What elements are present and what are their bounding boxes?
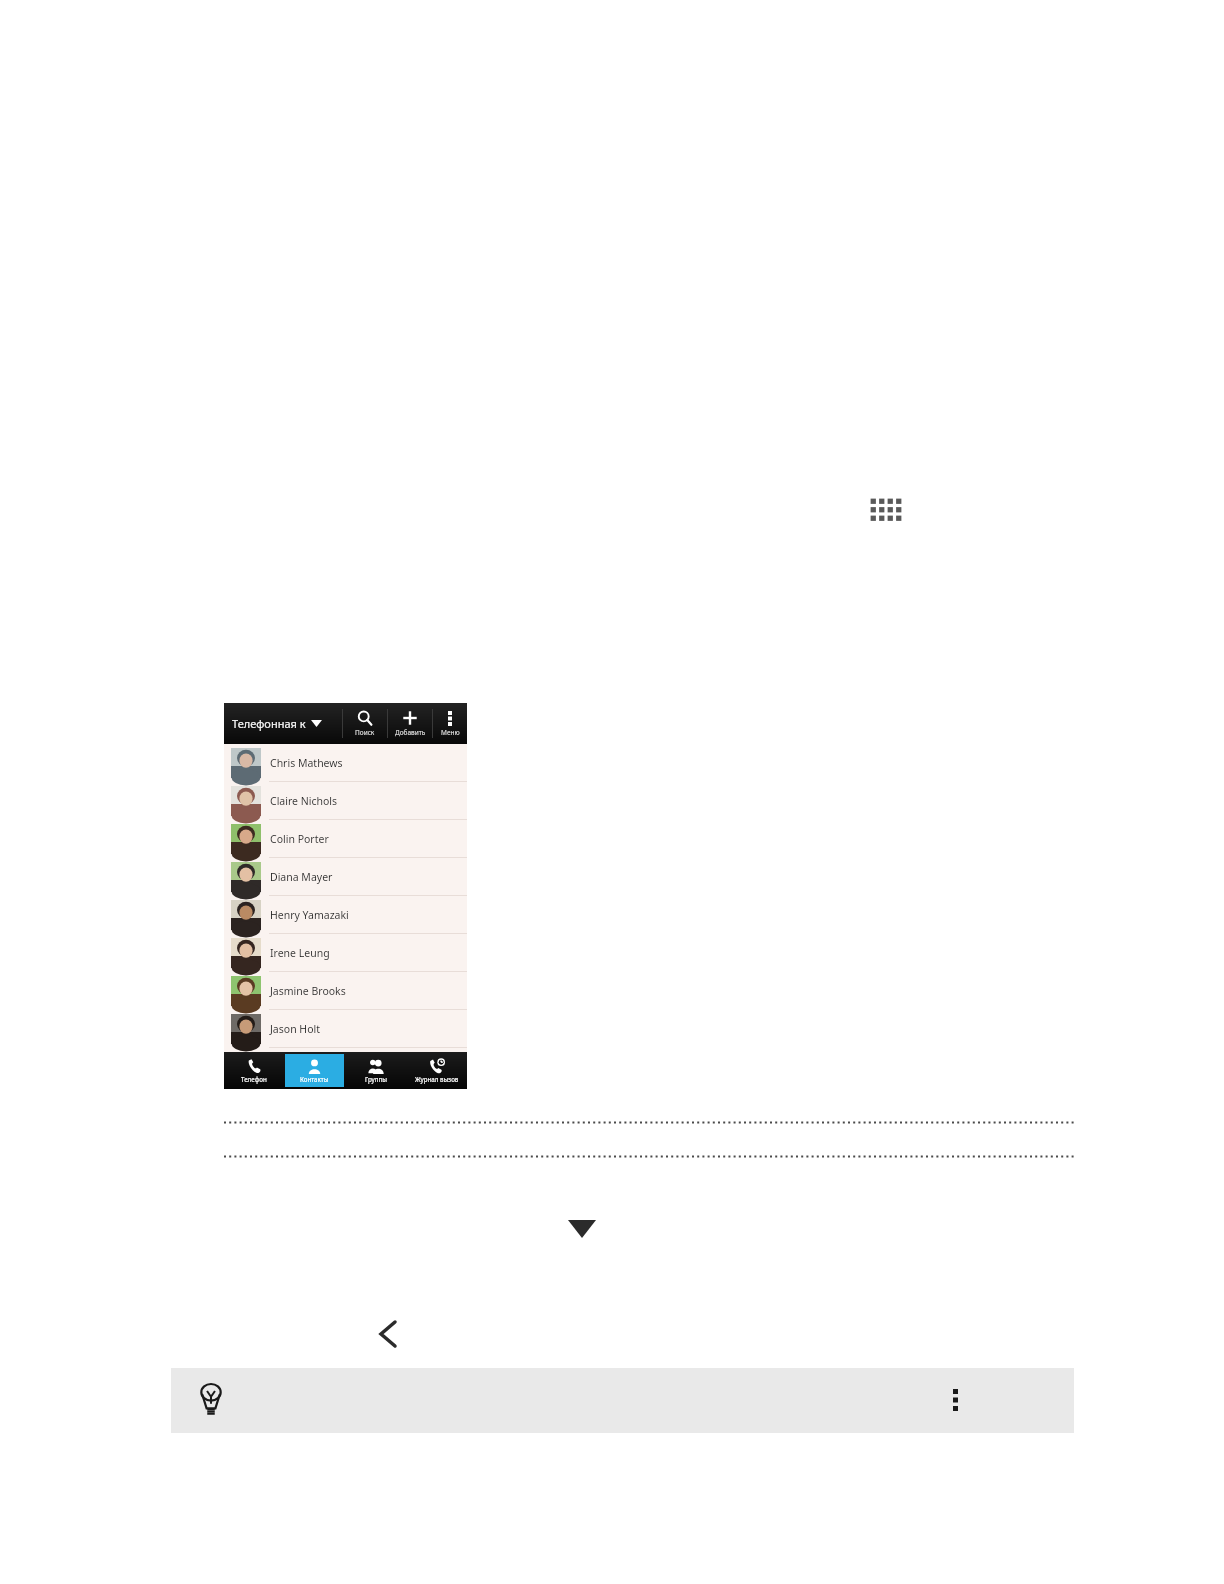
button[interactable]: Jason Holt (224, 1010, 467, 1048)
button[interactable]: Поиск (343, 703, 387, 744)
button[interactable]: Chris Mathews (224, 744, 467, 782)
button[interactable]: Irene Leung (224, 934, 467, 972)
button[interactable]: Claire Nichols (224, 782, 467, 820)
button[interactable]: Diana Mayer (224, 858, 467, 896)
button[interactable]: Группы (346, 1054, 405, 1087)
staticText: Claire Nichols (270, 794, 338, 808)
button[interactable]: Журнал вызов (407, 1054, 466, 1087)
button[interactable]: Back (372, 1318, 404, 1350)
button[interactable]: Телефонная к (224, 703, 342, 744)
button[interactable]: Jasmine Brooks (224, 972, 467, 1010)
button[interactable]: Colin Porter (224, 820, 467, 858)
staticText: Контакты (300, 1075, 329, 1083)
staticText: Телефонная к (232, 716, 306, 731)
staticText: Поиск (355, 728, 375, 737)
button[interactable]: Контакты (285, 1054, 344, 1087)
staticText: Jasmine Brooks (270, 984, 346, 998)
button[interactable]: Apps (866, 494, 906, 534)
staticText: Diana Mayer (270, 870, 333, 884)
staticText: Меню (441, 728, 460, 737)
staticText: Henry Yamazaki (270, 908, 349, 922)
button[interactable]: Телефон (225, 1054, 283, 1087)
staticText: Телефон (241, 1075, 267, 1083)
staticText: Добавить (395, 728, 426, 737)
staticText: Colin Porter (270, 832, 329, 846)
staticText: Irene Leung (270, 946, 330, 960)
staticText: Chris Mathews (270, 756, 343, 770)
button[interactable]: Добавить (388, 703, 432, 744)
staticText: Группы (365, 1075, 387, 1083)
button[interactable]: Меню (433, 703, 467, 744)
button[interactable]: More options (937, 1382, 973, 1418)
button[interactable]: Henry Yamazaki (224, 896, 467, 934)
staticText: Журнал вызов (415, 1075, 459, 1083)
staticText: Jason Holt (270, 1022, 320, 1036)
button[interactable]: Expand (566, 1213, 598, 1245)
